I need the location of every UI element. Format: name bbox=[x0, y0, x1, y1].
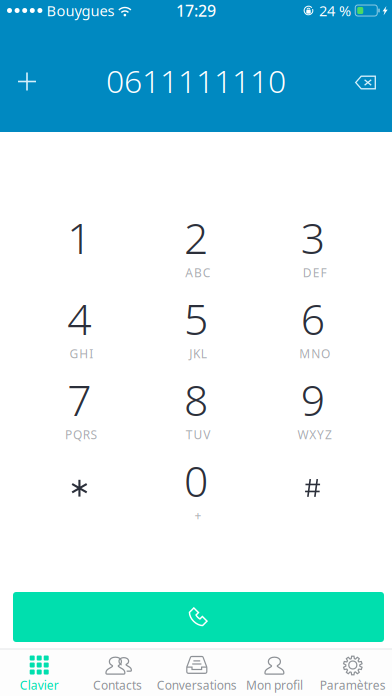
staticText: + bbox=[194, 507, 201, 523]
staticText: MNO bbox=[299, 345, 330, 361]
staticText: 0 bbox=[184, 452, 208, 509]
staticText: 4 bbox=[67, 290, 91, 347]
button[interactable]: 6 bbox=[254, 288, 371, 369]
button[interactable]: Paramètres bbox=[314, 649, 392, 696]
staticText: Bouygues bbox=[46, 1, 114, 20]
staticText: JKL bbox=[189, 345, 207, 361]
staticText: 0611111110 bbox=[106, 59, 286, 102]
staticText: Mon profil bbox=[246, 677, 303, 693]
button[interactable]: 4 bbox=[21, 288, 138, 369]
button[interactable]: Delete bbox=[336, 45, 392, 107]
staticText: 2 bbox=[184, 209, 208, 266]
button[interactable]: 8 bbox=[138, 369, 254, 450]
button[interactable] bbox=[21, 450, 138, 531]
button[interactable] bbox=[254, 450, 371, 531]
staticText: 9 bbox=[301, 371, 325, 428]
button[interactable]: Contacts bbox=[78, 649, 157, 696]
button[interactable]: 9 bbox=[254, 369, 371, 450]
staticText: WXYZ bbox=[297, 426, 332, 442]
staticText: Conversations bbox=[157, 677, 237, 693]
staticText: 6 bbox=[301, 290, 325, 347]
button[interactable]: 3 bbox=[254, 207, 371, 288]
staticText: Paramètres bbox=[320, 677, 386, 693]
staticText: 24 % bbox=[319, 1, 351, 20]
button[interactable]: 7 bbox=[21, 369, 138, 450]
button[interactable]: 2 bbox=[138, 207, 254, 288]
staticText: 8 bbox=[184, 371, 208, 428]
staticText: 5 bbox=[184, 290, 208, 347]
staticText: DEF bbox=[303, 264, 326, 280]
staticText: 1 bbox=[67, 209, 91, 266]
staticText: Clavier bbox=[20, 677, 59, 693]
staticText: 3 bbox=[301, 209, 325, 266]
button[interactable]: Add contact bbox=[0, 43, 54, 109]
staticText: 7 bbox=[67, 371, 91, 428]
staticText: ABC bbox=[185, 264, 211, 280]
staticText: TUV bbox=[186, 426, 210, 442]
button[interactable]: 1 bbox=[21, 207, 138, 288]
button[interactable]: 0 bbox=[138, 450, 254, 531]
button[interactable]: 5 bbox=[138, 288, 254, 369]
staticText: PQRS bbox=[65, 426, 98, 442]
button[interactable]: Mon profil bbox=[235, 649, 314, 696]
button[interactable]: Clavier bbox=[0, 649, 78, 696]
button[interactable]: Call bbox=[13, 592, 384, 642]
staticText: GHI bbox=[69, 345, 93, 361]
staticText: 17:29 bbox=[176, 0, 216, 21]
staticText: Contacts bbox=[93, 677, 142, 693]
button[interactable]: Conversations bbox=[157, 649, 235, 696]
